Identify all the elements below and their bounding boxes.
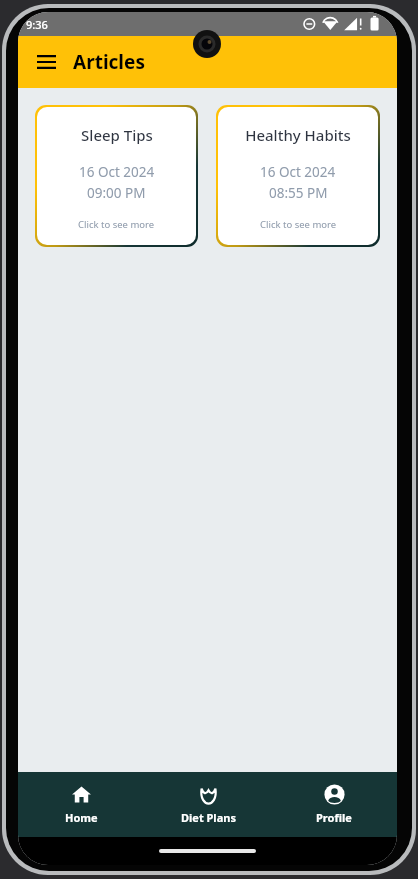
button[interactable]: Home (18, 778, 145, 831)
button[interactable]: Profile (271, 778, 397, 831)
staticText: Articles (73, 49, 145, 75)
staticText: Profile (316, 810, 352, 825)
staticText: Sleep Tips (81, 125, 153, 145)
staticText: Diet Plans (181, 810, 236, 825)
button[interactable]: Sleep Tips (37, 107, 196, 245)
staticText: 09:00 PM (87, 184, 146, 202)
button[interactable]: Open navigation menu (28, 44, 64, 80)
staticText: 08:55 PM (269, 184, 328, 202)
button[interactable]: Diet Plans (145, 778, 271, 831)
staticText: 16 Oct 2024 (79, 163, 155, 181)
staticText: 16 Oct 2024 (260, 163, 336, 181)
staticText: Click to see more (260, 218, 337, 231)
staticText: Click to see more (78, 218, 155, 231)
staticText: 9:36 (26, 17, 48, 32)
staticText: Healthy Habits (245, 125, 351, 145)
button[interactable]: Healthy Habits (218, 107, 378, 245)
staticText: Home (65, 810, 98, 825)
